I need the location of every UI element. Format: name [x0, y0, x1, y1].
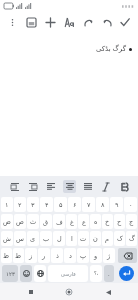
button[interactable]: گ — [126, 231, 137, 246]
staticText: پ — [80, 252, 87, 260]
button[interactable]: More options — [3, 13, 22, 32]
staticText: ک — [117, 235, 123, 243]
staticText: . — [108, 270, 110, 278]
button[interactable]: ۷ — [82, 197, 95, 212]
button[interactable]: ق — [40, 214, 52, 229]
button[interactable]: ف — [53, 214, 65, 229]
button[interactable]: ن — [90, 231, 101, 246]
staticText: ث — [30, 218, 37, 226]
staticText: ۳ — [31, 201, 35, 209]
button[interactable]: Emoji — [20, 265, 32, 282]
button[interactable]: ی — [27, 231, 39, 246]
button[interactable]: ۳ — [27, 197, 39, 212]
staticText: ؟‌، — [94, 270, 99, 277]
staticText: گ — [129, 235, 135, 243]
button[interactable]: غ — [66, 214, 77, 229]
button[interactable]: ه — [90, 214, 101, 229]
button[interactable]: خ — [102, 214, 113, 229]
button[interactable]: Align center — [63, 180, 76, 193]
button[interactable]: و — [90, 248, 102, 263]
button[interactable]: Bold — [117, 180, 130, 193]
staticText: و — [94, 252, 98, 260]
button[interactable]: Change language — [34, 265, 46, 282]
staticText: ف — [56, 218, 63, 226]
button[interactable]: ط — [13, 248, 24, 263]
staticText: ص — [16, 218, 24, 226]
staticText: ط — [15, 252, 22, 260]
button[interactable]: ۰ — [124, 197, 137, 212]
button[interactable]: ز — [25, 248, 37, 263]
button[interactable]: ؟‌، — [90, 265, 102, 282]
button[interactable]: Insert image — [22, 13, 41, 32]
staticText: ض — [3, 218, 11, 226]
button[interactable]: . — [104, 265, 114, 282]
staticText: ۴ — [45, 201, 49, 209]
staticText: ش — [3, 235, 11, 243]
button[interactable]: ۱۲۳ — [2, 265, 18, 282]
button[interactable]: Backspace — [118, 248, 137, 263]
button[interactable]: ۴ — [40, 197, 53, 212]
button[interactable]: م — [102, 231, 113, 246]
button[interactable]: Align left — [44, 180, 57, 193]
button[interactable]: ۹ — [110, 197, 123, 212]
button[interactable]: ل — [53, 231, 65, 246]
button[interactable]: فارسی — [48, 265, 88, 282]
button[interactable]: د — [64, 248, 76, 263]
button[interactable]: ر — [38, 248, 50, 263]
button[interactable]: ۸ — [96, 197, 109, 212]
staticText: ز — [29, 252, 33, 260]
button[interactable]: Italic — [99, 180, 112, 193]
button[interactable]: ش — [1, 231, 13, 246]
button[interactable]: ذ — [51, 248, 63, 263]
staticText: ظ — [3, 252, 10, 260]
button[interactable]: ث — [27, 214, 39, 229]
button[interactable]: ۲ — [14, 197, 26, 212]
staticText: ۰ — [129, 201, 133, 209]
button[interactable]: ۱ — [1, 197, 13, 212]
staticText: ع — [82, 218, 86, 226]
button[interactable]: ظ — [1, 248, 12, 263]
button[interactable]: Back — [100, 284, 116, 300]
button[interactable]: ت — [78, 231, 89, 246]
staticText: ۸ — [101, 201, 105, 209]
button[interactable]: پ — [77, 248, 89, 263]
button[interactable]: Enter — [119, 266, 134, 281]
button[interactable]: ض — [1, 214, 13, 229]
staticText: ن — [93, 235, 98, 243]
button[interactable]: ک — [114, 231, 125, 246]
staticText: ج — [129, 218, 134, 226]
button[interactable]: ص — [14, 214, 26, 229]
staticText: ۱۲۳ — [6, 271, 15, 277]
staticText: ر — [42, 252, 46, 260]
button[interactable]: Indent right — [8, 180, 21, 193]
button[interactable]: Insert — [41, 13, 60, 32]
staticText: ذ — [56, 252, 59, 260]
button[interactable]: ج — [126, 214, 137, 229]
button[interactable]: ژ — [103, 248, 115, 263]
button[interactable]: ب — [40, 231, 52, 246]
button[interactable]: Home — [61, 284, 77, 300]
button[interactable]: گرگ بڈکی — [0, 32, 138, 176]
button[interactable]: Align justify — [81, 180, 94, 193]
button[interactable]: Redo — [79, 13, 98, 32]
staticText: م — [105, 235, 110, 243]
button[interactable]: Undo — [98, 13, 117, 32]
staticText: ق — [43, 218, 49, 226]
button[interactable]: ۶ — [68, 197, 81, 212]
staticText: ح — [117, 218, 122, 226]
button[interactable]: Done — [116, 13, 134, 31]
button[interactable]: ا — [66, 231, 77, 246]
button[interactable]: س — [14, 231, 26, 246]
staticText: ۶ — [73, 201, 77, 209]
button[interactable]: Text format — [60, 13, 79, 32]
button[interactable]: ۵ — [54, 197, 67, 212]
button[interactable]: ح — [114, 214, 125, 229]
staticText: ب — [43, 235, 50, 243]
button[interactable]: Recents — [23, 284, 39, 300]
button[interactable]: Indent left — [26, 180, 39, 193]
button[interactable]: ع — [78, 214, 89, 229]
staticText: فارسی — [61, 271, 76, 277]
staticText: ۷ — [87, 201, 91, 209]
staticText: ی — [30, 235, 36, 243]
staticText: ت — [80, 235, 87, 243]
